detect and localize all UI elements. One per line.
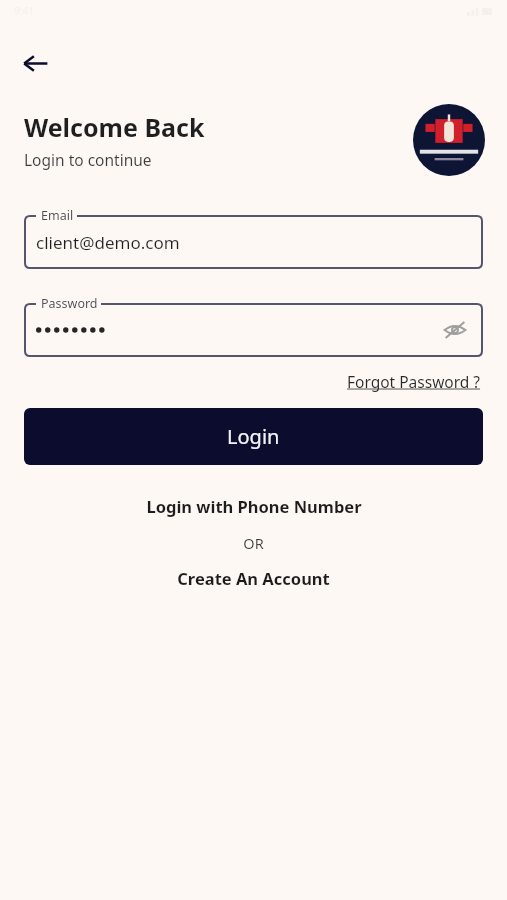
staticText: Login with Phone Number bbox=[146, 495, 362, 517]
button[interactable]: Create An Account bbox=[0, 567, 507, 589]
staticText: Create An Account bbox=[177, 567, 330, 589]
button[interactable]: Forgot Password ? bbox=[345, 368, 483, 395]
button[interactable]: Show password bbox=[433, 308, 477, 352]
button[interactable]: Back bbox=[11, 39, 59, 87]
staticText: client@demo.com bbox=[36, 231, 180, 254]
staticText: Login bbox=[227, 423, 280, 450]
staticText: OR bbox=[243, 533, 264, 553]
staticText: Forgot Password ? bbox=[347, 371, 481, 392]
button[interactable]: Login with Phone Number bbox=[0, 495, 507, 517]
staticText: Welcome Back bbox=[24, 110, 205, 144]
staticText: Email bbox=[41, 207, 74, 224]
staticText: Login to continue bbox=[24, 149, 152, 170]
button[interactable]: Login bbox=[24, 408, 483, 465]
button[interactable]: App logo bbox=[413, 104, 485, 176]
staticText: Password bbox=[41, 295, 98, 312]
staticText: 9:41 bbox=[14, 4, 34, 18]
